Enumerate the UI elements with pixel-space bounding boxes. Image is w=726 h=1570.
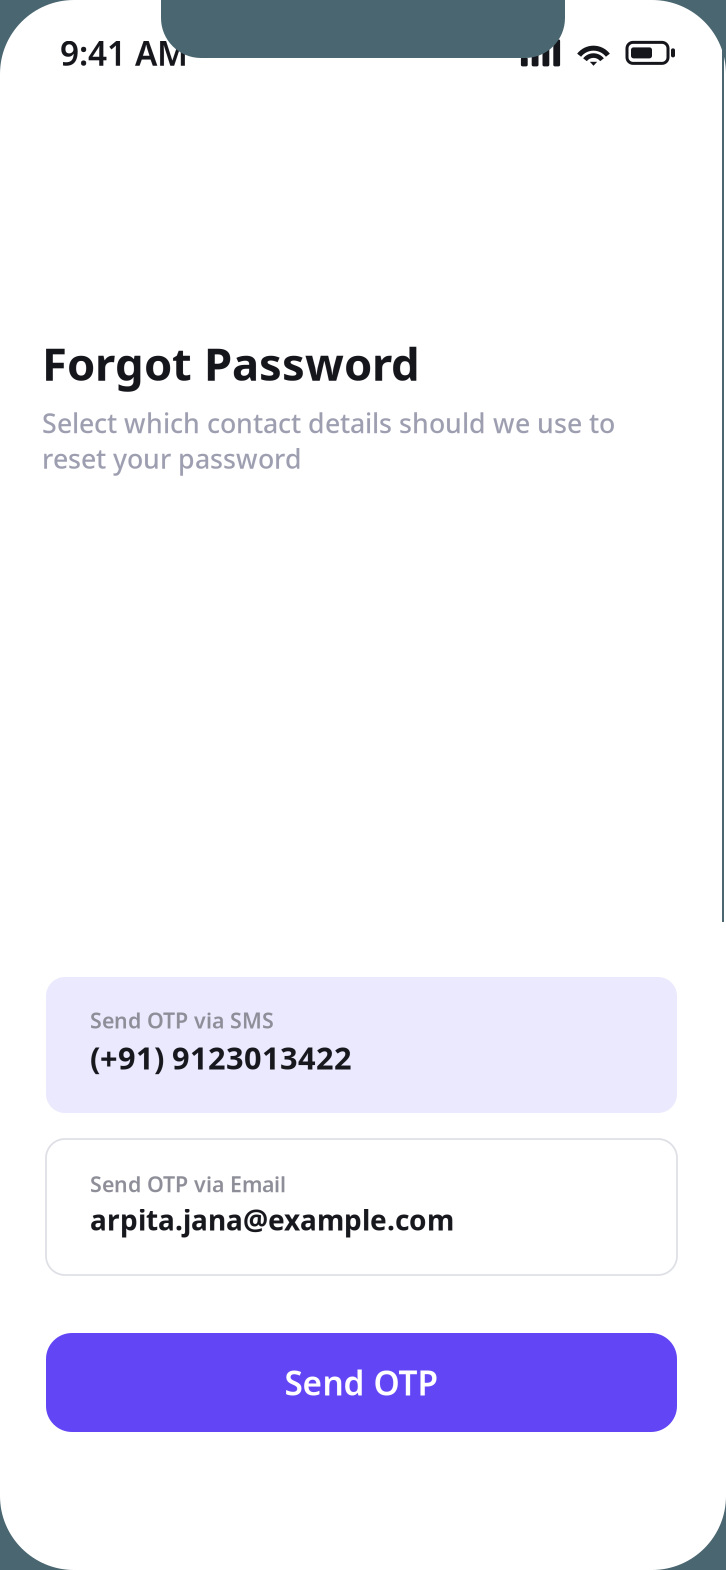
staticText: Send OTP bbox=[284, 1360, 438, 1405]
button[interactable]: Send OTP bbox=[46, 1333, 677, 1432]
staticText: arpita.jana@example.com bbox=[90, 1201, 454, 1238]
staticText: Forgot Password bbox=[42, 333, 420, 393]
staticText: Send OTP via SMS bbox=[90, 1006, 274, 1034]
button[interactable]: Send OTP via Email bbox=[46, 1139, 677, 1275]
staticText: Send OTP via Email bbox=[90, 1170, 286, 1198]
button[interactable]: Send OTP via SMS bbox=[46, 977, 677, 1113]
staticText: 9:41 AM bbox=[60, 31, 188, 75]
staticText: (+91) 9123013422 bbox=[90, 1037, 352, 1078]
staticText: Select which contact details should we u… bbox=[42, 405, 615, 476]
